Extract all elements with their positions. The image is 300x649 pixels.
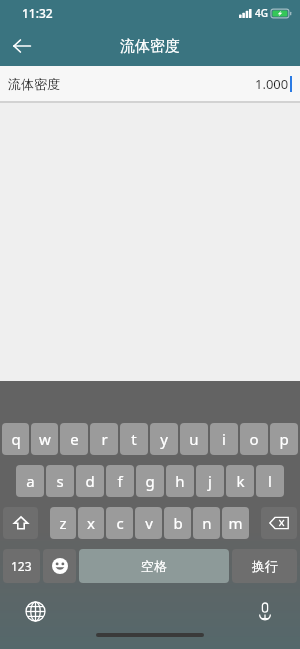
staticText: e (70, 429, 79, 449)
button[interactable]: x (78, 507, 104, 539)
staticText: z (59, 513, 67, 533)
button[interactable]: Voice input (250, 596, 280, 626)
staticText: x (87, 513, 95, 533)
staticText: h (175, 471, 185, 491)
button[interactable]: r (90, 423, 118, 455)
button[interactable]: n (193, 507, 220, 539)
button[interactable]: u (180, 423, 208, 455)
button[interactable]: s (46, 465, 74, 497)
staticText: y (160, 429, 168, 449)
button[interactable]: z (50, 507, 76, 539)
button[interactable]: i (210, 423, 238, 455)
staticText: 1.000 (255, 75, 289, 93)
button[interactable]: Change keyboard language (20, 596, 50, 626)
staticText: d (85, 471, 95, 491)
button[interactable]: Shift (3, 507, 38, 539)
staticText: k (236, 471, 245, 491)
staticText: p (279, 429, 289, 449)
button[interactable]: f (106, 465, 134, 497)
staticText: o (249, 429, 259, 449)
staticText: 流体密度 (8, 76, 60, 92)
button[interactable]: Backspace (261, 507, 297, 539)
staticText: j (208, 471, 212, 491)
staticText: a (26, 471, 35, 491)
button[interactable]: d (76, 465, 104, 497)
button[interactable]: 流体密度 (0, 66, 300, 101)
button[interactable]: q (2, 423, 29, 455)
staticText: 4G (255, 6, 268, 20)
staticText: u (189, 429, 199, 449)
button[interactable]: b (164, 507, 191, 539)
staticText: c (116, 513, 124, 533)
staticText: b (173, 513, 183, 533)
button[interactable]: a (16, 465, 44, 497)
staticText: n (202, 513, 212, 533)
button[interactable]: v (135, 507, 162, 539)
button[interactable]: y (150, 423, 178, 455)
staticText: 换行 (252, 558, 278, 574)
button[interactable]: o (240, 423, 268, 455)
button[interactable]: 换行 (232, 549, 297, 583)
staticText: 空格 (141, 558, 167, 574)
staticText: r (101, 429, 108, 449)
staticText: t (131, 429, 137, 449)
button[interactable]: m (222, 507, 249, 539)
button[interactable]: e (60, 423, 88, 455)
staticText: g (145, 471, 155, 491)
staticText: w (39, 429, 51, 449)
button[interactable]: k (226, 465, 254, 497)
button[interactable]: p (270, 423, 298, 455)
button[interactable]: g (136, 465, 164, 497)
staticText: s (56, 471, 64, 491)
button[interactable]: w (31, 423, 58, 455)
staticText: i (222, 429, 226, 449)
button[interactable]: 123 (3, 549, 40, 583)
staticText: l (268, 471, 272, 491)
staticText: 123 (11, 558, 32, 574)
button[interactable]: t (120, 423, 148, 455)
button[interactable]: Emoji (43, 549, 76, 583)
staticText: 流体密度 (120, 37, 180, 56)
button[interactable]: l (256, 465, 284, 497)
button[interactable]: Back (0, 26, 44, 66)
button[interactable]: 空格 (79, 549, 229, 583)
staticText: v (145, 513, 153, 533)
staticText: q (11, 429, 21, 449)
staticText: 11:32 (22, 5, 53, 21)
staticText: f (117, 471, 123, 491)
button[interactable]: c (106, 507, 133, 539)
button[interactable]: j (196, 465, 224, 497)
button[interactable]: h (166, 465, 194, 497)
staticText: m (228, 513, 243, 533)
